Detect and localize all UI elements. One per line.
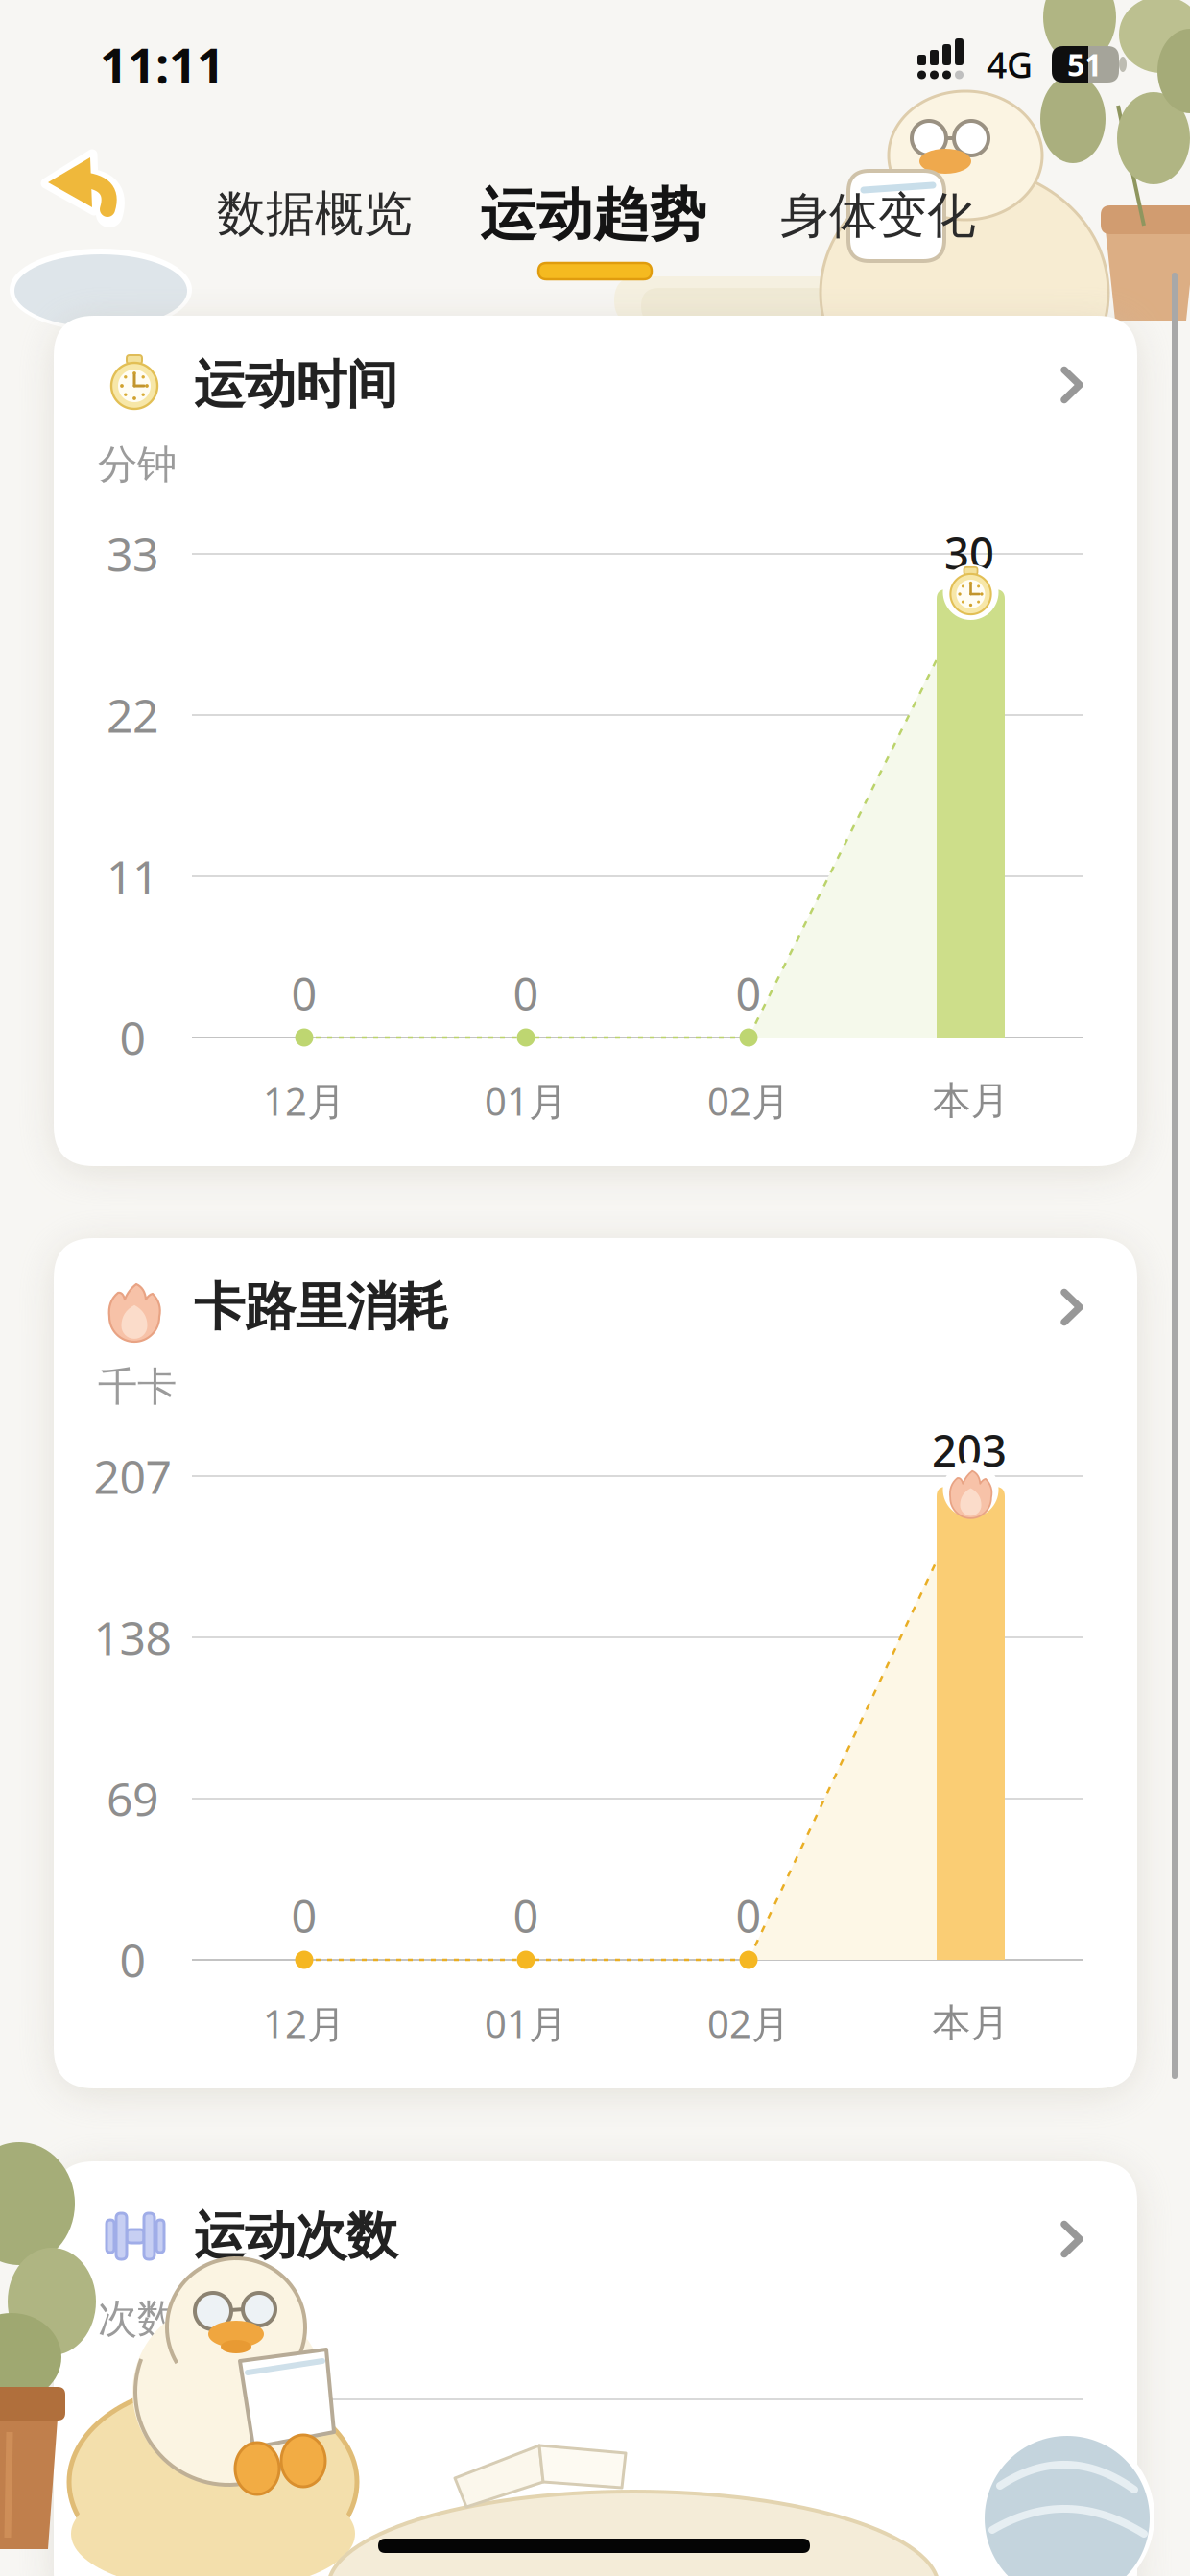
staticText: 12月 <box>263 1998 345 2049</box>
staticText: 0 <box>513 1886 539 1945</box>
staticText: 69 <box>107 1768 158 1829</box>
staticText: 次数 <box>98 2294 177 2343</box>
staticText: 30 <box>944 524 994 582</box>
staticText: 0 <box>119 1929 145 1990</box>
staticText: 01月 <box>485 1998 567 2049</box>
staticText: 33 <box>107 523 158 584</box>
staticText: 0 <box>736 964 762 1023</box>
staticText: 4G <box>987 41 1033 88</box>
button[interactable]: 运动时间 <box>54 316 1137 1166</box>
staticText: 运动次数 <box>194 2205 397 2268</box>
staticText: 51 <box>1067 44 1102 85</box>
staticText: 0 <box>119 1007 145 1068</box>
button[interactable]: 身体变化 <box>780 186 976 246</box>
staticText: 0 <box>291 1886 317 1945</box>
staticText: 11:11 <box>100 32 225 97</box>
staticText: 身体变化 <box>780 186 976 246</box>
staticText: 0 <box>736 1886 762 1945</box>
staticText: 0 <box>513 964 539 1023</box>
staticText: 分钟 <box>98 440 177 489</box>
button[interactable]: 卡路里消耗 <box>54 1238 1137 2088</box>
button[interactable] <box>46 155 123 218</box>
staticText: 0 <box>291 964 317 1023</box>
staticText: 运动时间 <box>194 353 397 416</box>
staticText: 22 <box>107 684 158 746</box>
staticText: 02月 <box>707 1075 790 1126</box>
staticText: 12月 <box>263 1075 345 1126</box>
staticText: 千卡 <box>98 1362 177 1411</box>
staticText: 138 <box>94 1607 171 1668</box>
staticText: 本月 <box>932 2000 1009 2047</box>
button[interactable]: 数据概览 <box>217 184 413 244</box>
staticText: 运动趋势 <box>480 180 706 250</box>
staticText: 11 <box>107 846 158 907</box>
staticText: 207 <box>94 1445 171 1507</box>
staticText: 02月 <box>707 1998 790 2049</box>
staticText: 卡路里消耗 <box>194 1276 448 1339</box>
staticText: 本月 <box>932 1077 1009 1124</box>
staticText: 203 <box>932 1421 1007 1479</box>
button[interactable]: 运动趋势 <box>480 180 706 250</box>
staticText: 01月 <box>485 1075 567 1126</box>
staticText: 数据概览 <box>217 184 413 244</box>
button[interactable]: 运动次数 <box>54 2161 1137 2576</box>
